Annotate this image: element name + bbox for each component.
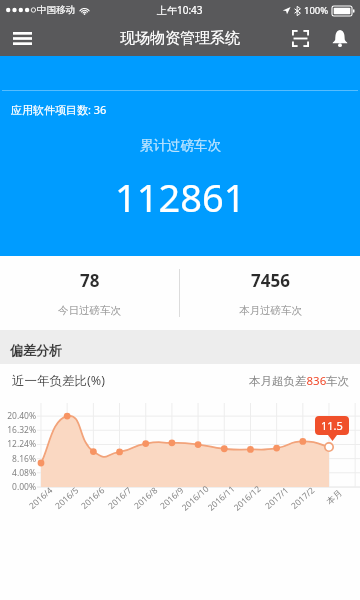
button[interactable]: Scan	[280, 20, 320, 56]
staticText: 2016/10	[179, 482, 212, 513]
staticText: 20.40%	[1, 410, 36, 422]
staticText: 16.32%	[1, 424, 36, 436]
staticText: 2016/7	[106, 484, 134, 512]
staticText: 偏差分析	[10, 342, 62, 358]
staticText: 现场物资管理系统	[120, 29, 240, 48]
staticText: 上午10:43	[157, 3, 203, 17]
staticText: 应用软件项目数: 36	[11, 102, 107, 117]
staticText: 8.16%	[1, 453, 36, 465]
staticText: 100%	[304, 4, 329, 17]
staticText: 近一年负差比(%)	[12, 372, 105, 389]
button[interactable]: Notifications	[320, 20, 360, 56]
staticText: 2016/8	[132, 484, 160, 512]
staticText: 2016/4	[27, 484, 55, 512]
staticText: 2017/2	[289, 484, 317, 512]
staticText: 4.08%	[1, 467, 36, 479]
staticText: 0.00%	[1, 481, 36, 493]
staticText: 2016/9	[158, 484, 186, 512]
staticText: 7456	[251, 269, 290, 292]
button[interactable]: 应用软件项目数: 36	[0, 56, 360, 256]
button[interactable]: Menu	[0, 20, 44, 56]
staticText: 112861	[115, 171, 246, 223]
staticText: 本月过磅车次	[239, 304, 302, 317]
staticText: 今日过磅车次	[58, 304, 121, 317]
button[interactable]: 7456	[180, 256, 360, 330]
staticText: 2016/5	[53, 484, 81, 512]
staticText: 中国移动	[37, 4, 75, 16]
staticText: 78	[80, 269, 100, 292]
staticText: 本月超负差836车次	[249, 373, 350, 389]
staticText: 2016/6	[79, 484, 107, 512]
staticText: 2017/1	[263, 484, 291, 512]
button[interactable]: 78	[0, 256, 179, 330]
staticText: 2016/11	[205, 482, 238, 513]
staticText: 12.24%	[1, 438, 36, 450]
staticText: 累计过磅车次	[140, 137, 221, 154]
staticText: 11.5	[321, 418, 343, 433]
staticText: 2016/12	[231, 482, 264, 513]
staticText: 本月	[324, 488, 344, 507]
